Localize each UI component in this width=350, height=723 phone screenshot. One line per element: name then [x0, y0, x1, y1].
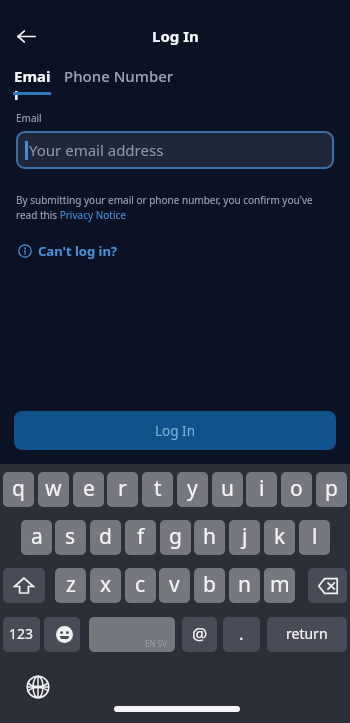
staticText: Log In — [155, 422, 195, 440]
staticText: n — [238, 570, 251, 599]
staticText: e — [83, 474, 95, 503]
button[interactable]: Emoji — [44, 617, 80, 652]
staticText: Can't log in? — [38, 242, 118, 260]
staticText: r — [118, 474, 127, 503]
staticText: Your email address — [29, 140, 164, 160]
staticText: return — [286, 624, 328, 643]
button[interactable]: k — [264, 520, 295, 555]
staticText: g — [169, 522, 182, 551]
staticText: u — [221, 474, 234, 503]
button[interactable]: x — [90, 568, 121, 603]
button[interactable]: Email — [13, 68, 51, 102]
staticText: t — [154, 474, 162, 503]
staticText: j — [242, 522, 248, 551]
staticText: Log In — [152, 26, 199, 46]
button[interactable]: r — [107, 472, 138, 507]
button[interactable]: s — [55, 520, 86, 555]
button[interactable]: Shift — [3, 568, 45, 603]
button[interactable]: e — [73, 472, 104, 507]
staticText: EN SV — [145, 638, 167, 649]
staticText: f — [137, 522, 145, 551]
staticText: m — [270, 570, 290, 599]
button[interactable]: Can't log in? — [18, 242, 118, 260]
button[interactable]: Space — [89, 617, 175, 652]
staticText: w — [45, 474, 62, 503]
button[interactable]: n — [229, 568, 260, 603]
button[interactable]: Your email address — [16, 131, 334, 169]
button[interactable]: . — [223, 617, 260, 652]
staticText: d — [99, 522, 112, 551]
button[interactable]: d — [90, 520, 121, 555]
button[interactable]: h — [194, 520, 225, 555]
button[interactable]: Change keyboard — [22, 671, 54, 703]
button[interactable]: return — [267, 617, 347, 652]
button[interactable]: w — [38, 472, 69, 507]
button[interactable]: q — [3, 472, 34, 507]
button[interactable]: Log In — [14, 411, 336, 450]
button[interactable]: i — [246, 472, 277, 507]
staticText: . — [239, 622, 244, 645]
button[interactable]: u — [212, 472, 243, 507]
button[interactable]: Back — [7, 17, 45, 55]
staticText: Email — [16, 111, 42, 125]
staticText: z — [66, 570, 76, 599]
button[interactable]: a — [21, 520, 52, 555]
staticText: h — [203, 522, 216, 551]
button[interactable]: p — [316, 472, 347, 507]
button[interactable]: c — [125, 568, 156, 603]
button[interactable]: f — [125, 520, 156, 555]
button[interactable]: z — [55, 568, 86, 603]
button[interactable]: v — [159, 568, 190, 603]
button[interactable]: b — [194, 568, 225, 603]
staticText: p — [325, 474, 338, 503]
staticText: By submitting your email or phone number… — [16, 193, 334, 222]
staticText: y — [187, 474, 198, 503]
staticText: o — [290, 474, 303, 503]
button[interactable]: Phone Number — [62, 68, 176, 102]
button[interactable]: Backspace — [308, 568, 347, 603]
staticText: q — [12, 474, 25, 503]
staticText: @ — [192, 622, 208, 645]
button[interactable]: 123 — [3, 617, 40, 652]
staticText: v — [169, 570, 180, 599]
staticText: k — [274, 522, 286, 551]
button[interactable]: o — [281, 472, 312, 507]
staticText: Phone Number — [64, 66, 174, 86]
staticText: x — [100, 570, 112, 599]
staticText: l — [312, 522, 318, 551]
button[interactable]: l — [299, 520, 330, 555]
staticText: c — [135, 570, 146, 599]
button[interactable]: t — [142, 472, 173, 507]
button[interactable]: y — [177, 472, 208, 507]
staticText: Email — [14, 66, 52, 100]
button[interactable]: g — [160, 520, 191, 555]
button[interactable]: @ — [182, 617, 217, 652]
staticText: 123 — [9, 624, 34, 643]
staticText: s — [65, 522, 76, 551]
button[interactable]: j — [229, 520, 260, 555]
staticText: b — [203, 570, 216, 599]
staticText: i — [259, 474, 265, 503]
button[interactable]: m — [264, 568, 295, 603]
staticText: a — [31, 522, 43, 551]
